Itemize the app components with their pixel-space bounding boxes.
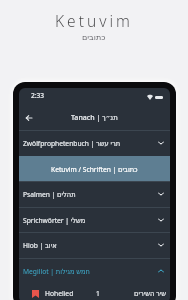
staticText: Hiob | איוב <box>23 241 57 250</box>
staticText: Hohelied <box>45 289 74 298</box>
staticText: Tanach | תנ״ך <box>71 113 118 123</box>
button[interactable]: Hohelied <box>19 283 170 300</box>
staticText: שיר השירים <box>134 289 167 298</box>
staticText: 2:33 <box>31 91 45 100</box>
button[interactable]: Megillot | חמש מגילות <box>19 258 170 284</box>
staticText: 1 <box>96 289 100 298</box>
button[interactable]: Psalmen | תהלים <box>19 181 170 207</box>
staticText: Psalmen | תהלים <box>23 190 76 199</box>
staticText: כתובים <box>82 33 106 42</box>
button[interactable]: Hiob | איוב <box>19 232 170 258</box>
button[interactable]: Zwölfprophetenbuch | תרי עשר <box>19 130 170 156</box>
button[interactable]: Back <box>22 111 35 124</box>
staticText: Ketuvim / Schriften | כתובים <box>51 165 138 174</box>
staticText: Megillot | חמש מגילות <box>23 267 90 276</box>
button[interactable]: Ketuvim / Schriften | כתובים <box>19 156 170 182</box>
staticText: Ketuvim <box>55 10 133 31</box>
staticText: Sprichwörter | משלי <box>23 216 86 225</box>
button[interactable]: Sprichwörter | משלי <box>19 207 170 233</box>
staticText: Zwölfprophetenbuch | תרי עשר <box>23 139 121 148</box>
